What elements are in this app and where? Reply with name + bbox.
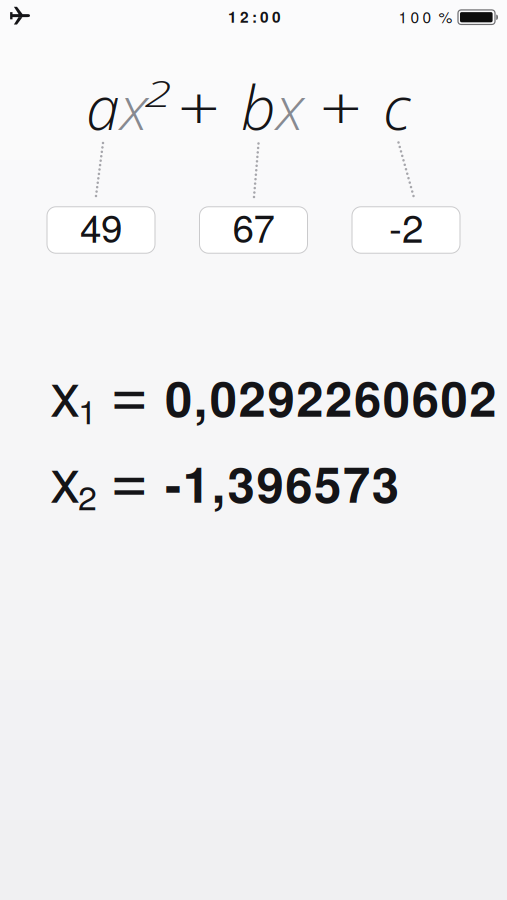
staticText: +	[322, 65, 357, 148]
staticText: +	[180, 65, 215, 148]
staticText: x	[50, 433, 81, 520]
staticText: 1 2 : 0 0	[228, 5, 281, 28]
button[interactable]: 67	[199, 207, 307, 253]
staticText: 67	[232, 198, 274, 254]
button[interactable]: 49	[47, 207, 155, 253]
staticText: 2	[148, 67, 169, 118]
staticText: 1 0 0 %	[398, 5, 452, 28]
staticText: a	[86, 65, 120, 148]
staticText: 2	[78, 471, 97, 520]
button[interactable]: -2	[352, 207, 460, 253]
staticText: =	[110, 427, 149, 521]
staticText: x	[120, 65, 148, 148]
staticText: -1,396573	[165, 448, 399, 518]
staticText: x	[276, 65, 304, 148]
staticText: 1	[78, 385, 97, 434]
staticText: b	[241, 65, 276, 148]
staticText: =	[110, 341, 149, 435]
staticText: x	[50, 347, 81, 434]
staticText: 0,0292260602	[165, 362, 496, 432]
staticText: c	[383, 65, 410, 148]
staticText: -2	[389, 198, 423, 254]
staticText: 49	[80, 198, 122, 254]
